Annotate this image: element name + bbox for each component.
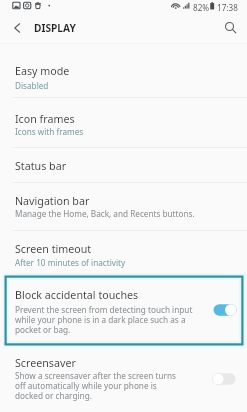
button[interactable]: Turn on	[212, 372, 236, 386]
staticText: Easy mode	[15, 64, 70, 79]
button[interactable]: Status bar	[0, 148, 247, 183]
staticText: Disabled	[15, 80, 49, 91]
staticText: DISPLAY	[34, 21, 76, 35]
button[interactable]: Block accidental touches	[2, 273, 246, 348]
button[interactable]: Turn off	[213, 303, 237, 317]
staticText: Icon frames	[15, 112, 75, 127]
staticText: 82%	[193, 2, 210, 13]
staticText: Manage the Home, Back, and Recents butto…	[15, 208, 195, 219]
staticText: Screensaver	[15, 356, 76, 371]
button[interactable]: Easy mode	[0, 50, 247, 98]
staticText: Navigation bar	[15, 194, 90, 209]
button[interactable]: Navigation bar	[0, 183, 247, 231]
staticText: Status bar	[15, 159, 67, 174]
button[interactable]: Search	[217, 15, 243, 41]
button[interactable]: Screensaver	[0, 348, 247, 412]
staticText: Block accidental touches	[15, 288, 139, 303]
staticText: Prevent the screen from detecting touch …	[15, 304, 197, 335]
button[interactable]: Navigate up	[3, 14, 31, 42]
staticText: Screen timeout	[15, 242, 92, 257]
staticText: Icons with frames	[15, 126, 84, 137]
staticText: Show a screensaver after the screen turn…	[15, 370, 183, 401]
button[interactable]: Icon frames	[0, 98, 247, 148]
button[interactable]: Screen timeout	[0, 231, 247, 275]
staticText: After 10 minutes of inactivity	[15, 257, 126, 268]
staticText: 17:38	[217, 2, 238, 13]
